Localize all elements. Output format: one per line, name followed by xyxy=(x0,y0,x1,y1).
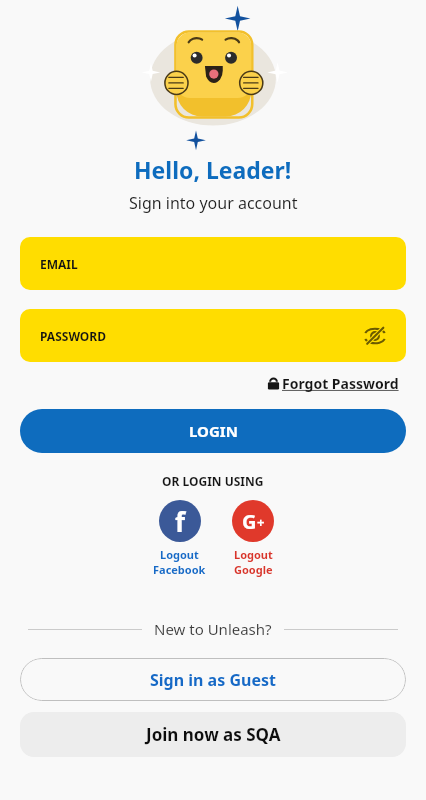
button[interactable]: f xyxy=(149,500,210,577)
staticText: Join now as SQA xyxy=(146,723,281,746)
staticText: Logout xyxy=(160,547,199,562)
staticText: Facebook xyxy=(153,562,206,577)
button[interactable]: LOGIN xyxy=(20,409,406,453)
staticText: Sign in as Guest xyxy=(150,669,276,691)
staticText: Hello, Leader! xyxy=(134,154,292,185)
staticText: Logout xyxy=(234,547,273,562)
button[interactable]: Join now as SQA xyxy=(20,712,406,757)
staticText: PASSWORD xyxy=(40,328,107,344)
staticText: f xyxy=(175,504,186,539)
staticText: + xyxy=(257,513,265,531)
button[interactable]: EMAIL xyxy=(20,237,406,290)
button[interactable]: G xyxy=(228,500,278,577)
staticText: New to Unleash? xyxy=(154,619,272,639)
staticText: LOGIN xyxy=(189,421,238,441)
button[interactable]: Sign in as Guest xyxy=(20,658,406,701)
button[interactable]: Forgot Password xyxy=(264,371,406,396)
staticText: Google xyxy=(234,562,273,577)
staticText: Sign into your account xyxy=(129,192,298,214)
button[interactable]: PASSWORD xyxy=(20,309,406,362)
staticText: EMAIL xyxy=(40,256,78,272)
staticText: G xyxy=(242,508,257,535)
button[interactable]: Show password xyxy=(362,323,388,349)
staticText: Forgot Password xyxy=(282,374,403,393)
staticText: OR LOGIN USING xyxy=(162,473,264,489)
